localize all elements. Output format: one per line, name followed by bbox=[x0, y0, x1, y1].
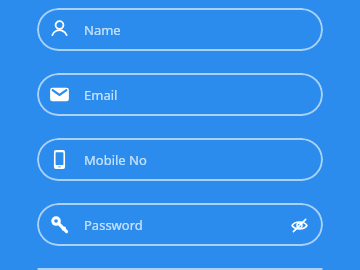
button[interactable]: Email bbox=[37, 73, 323, 116]
staticText: Mobile No bbox=[84, 151, 147, 169]
button[interactable]: Password bbox=[37, 203, 323, 246]
staticText: Email bbox=[84, 86, 118, 104]
button[interactable]: Toggle password visibility bbox=[288, 214, 310, 236]
button[interactable]: confirm Password bbox=[37, 268, 323, 270]
button[interactable]: Name bbox=[37, 8, 323, 51]
staticText: Name bbox=[84, 21, 121, 39]
staticText: Password bbox=[84, 216, 143, 234]
button[interactable]: Mobile No bbox=[37, 138, 323, 181]
